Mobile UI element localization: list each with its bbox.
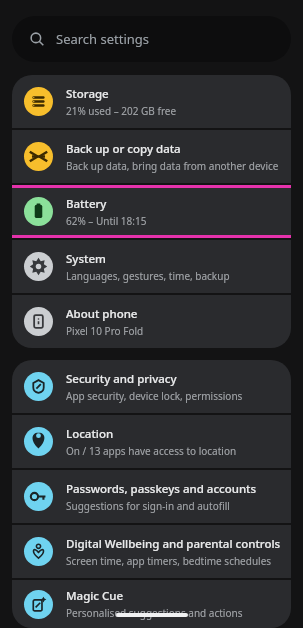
staticText: Search settings [56, 30, 150, 48]
button[interactable]: Search settings [12, 16, 291, 62]
button[interactable]: Security and privacy [12, 360, 291, 413]
staticText: Magic Cue [66, 588, 124, 604]
button[interactable]: Storage [12, 75, 291, 128]
staticText: Pixel 10 Pro Fold [66, 324, 144, 338]
staticText: 21% used – 202 GB free [66, 104, 177, 118]
staticText: 62% – Until 18:15 [66, 214, 147, 228]
button[interactable]: About phone [12, 295, 291, 348]
staticText: App security, device lock, permissions [66, 389, 243, 403]
staticText: Languages, gestures, time, backup [66, 269, 230, 283]
button[interactable]: Back up or copy data [12, 130, 291, 183]
button[interactable]: Location [12, 415, 291, 468]
button[interactable]: Passwords, passkeys and accounts [12, 470, 291, 523]
staticText: Security and privacy [66, 371, 177, 387]
staticText: Battery [66, 196, 107, 212]
staticText: Location [66, 426, 114, 442]
staticText: Passwords, passkeys and accounts [66, 481, 257, 497]
button[interactable]: Battery [12, 185, 291, 238]
staticText: Back up or copy data [66, 141, 181, 157]
staticText: On / 13 apps have access to location [66, 444, 237, 458]
staticText: About phone [66, 306, 138, 322]
staticText: Back up data, bring data from another de… [66, 159, 279, 173]
staticText: Screen time, app timers, bedtime schedul… [66, 554, 272, 568]
button[interactable]: Magic Cue [12, 580, 291, 628]
staticText: System [66, 251, 106, 267]
staticText: Digital Wellbeing and parental controls [66, 536, 281, 552]
button[interactable]: Digital Wellbeing and parental controls [12, 525, 291, 578]
staticText: Personalised suggestions and actions [66, 606, 243, 620]
staticText: Storage [66, 86, 109, 102]
button[interactable]: System [12, 240, 291, 293]
staticText: Suggestions for sign-in and autofill [66, 499, 230, 513]
